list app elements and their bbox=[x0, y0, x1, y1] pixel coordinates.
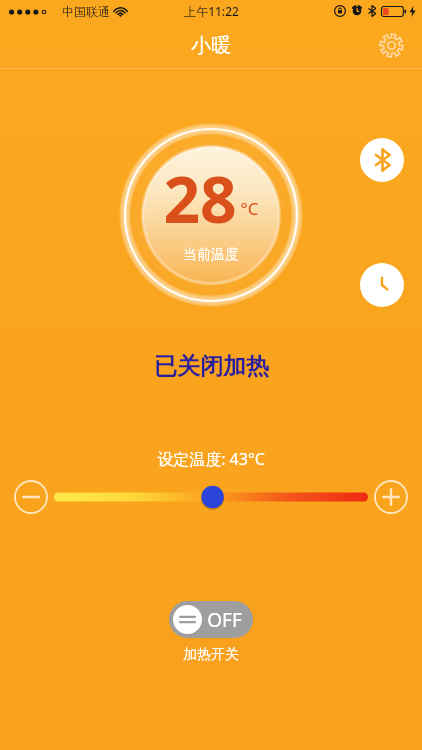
staticText: 设定温度: 43°C bbox=[157, 448, 265, 470]
staticText: 当前温度 bbox=[183, 246, 239, 264]
staticText: 28 bbox=[163, 155, 237, 242]
staticText: 加热开关 bbox=[183, 646, 239, 664]
staticText: 中国联通 bbox=[62, 4, 110, 19]
button[interactable] bbox=[54, 482, 368, 512]
button[interactable]: Timer bbox=[360, 263, 404, 307]
button[interactable]: Increase temperature bbox=[368, 474, 414, 520]
button[interactable]: OFF bbox=[169, 601, 253, 638]
staticText: 已关闭加热 bbox=[154, 352, 269, 381]
button[interactable]: Decrease temperature bbox=[8, 474, 54, 520]
staticText: 小暖 bbox=[191, 33, 231, 58]
button[interactable]: Settings bbox=[374, 28, 408, 62]
staticText: OFF bbox=[207, 607, 242, 633]
staticText: 上午11:22 bbox=[184, 3, 239, 19]
button[interactable]: Bluetooth bbox=[360, 138, 404, 182]
staticText: °C bbox=[240, 197, 259, 220]
